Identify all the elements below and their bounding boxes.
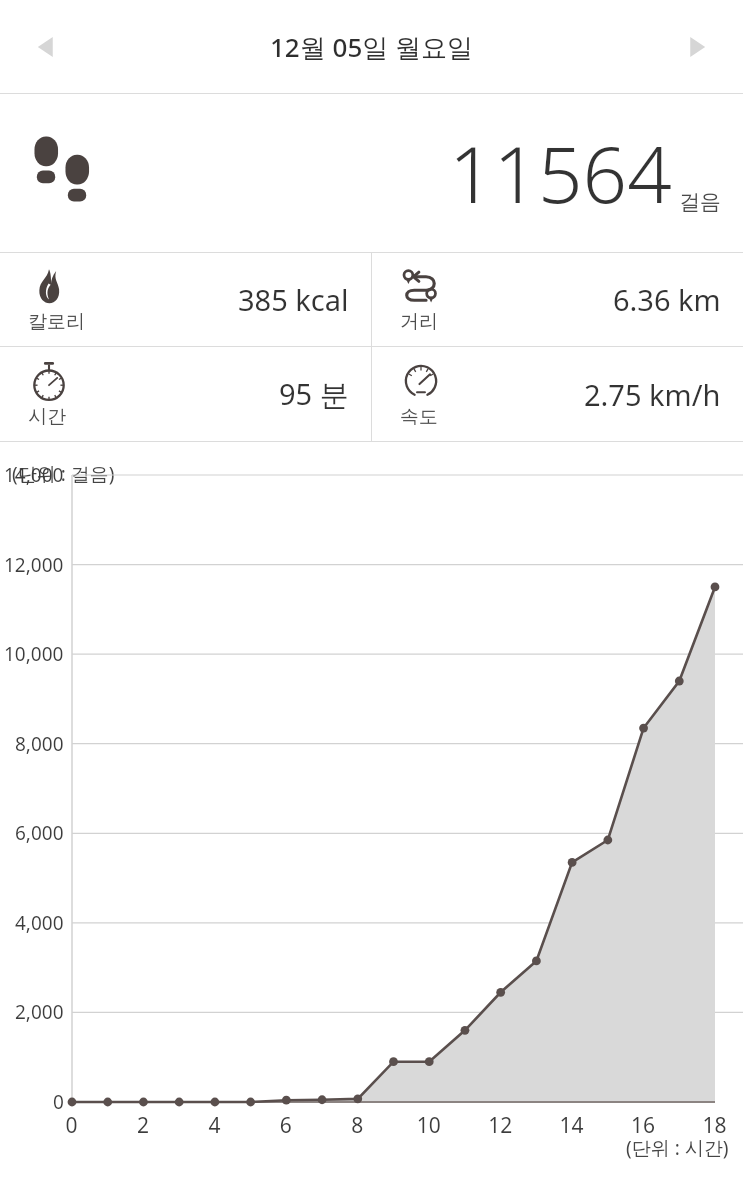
staticText: (단위 : 걸음)	[12, 461, 115, 487]
staticText: 2.75 km/h	[584, 375, 721, 414]
button[interactable]: 시간	[0, 347, 371, 441]
staticText: 속도	[400, 405, 438, 429]
button[interactable]: Next day	[671, 21, 723, 73]
staticText: (단위 : 시간)	[626, 1135, 729, 1161]
staticText: 시간	[28, 405, 66, 429]
staticText: 칼로리	[28, 310, 85, 334]
staticText: 11564	[449, 120, 672, 226]
button[interactable]: 거리	[372, 253, 743, 346]
button[interactable]: Previous day	[20, 21, 72, 73]
button[interactable]: 칼로리	[0, 253, 371, 346]
staticText: 거리	[400, 310, 438, 334]
button[interactable]: 속도	[372, 347, 743, 441]
staticText: 6.36 km	[613, 280, 721, 319]
staticText: 385 kcal	[238, 280, 349, 319]
staticText: 12월 05일 월요일	[270, 29, 474, 65]
staticText: 95 분	[279, 374, 349, 414]
staticText: 걸음	[679, 189, 721, 215]
